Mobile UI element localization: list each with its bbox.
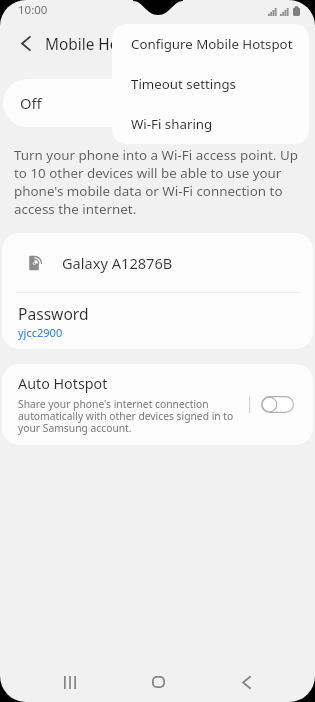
staticText: yjcc2900 [18, 325, 63, 340]
staticText: Auto Hotspot [18, 374, 108, 393]
button[interactable]: Recent apps [48, 660, 92, 702]
staticText: Mobile Hotspot [45, 34, 157, 55]
staticText: Configure Mobile Hotspot [131, 35, 293, 53]
button[interactable]: Password [2, 293, 313, 349]
staticText: Galaxy A12876B [62, 253, 173, 273]
staticText: Turn your phone into a Wi-Fi access poin… [14, 146, 301, 218]
staticText: Timeout settings [131, 75, 236, 93]
button[interactable]: Configure Mobile Hotspot [112, 24, 309, 64]
button[interactable]: Auto Hotspot [2, 364, 313, 445]
button[interactable]: Navigate up [6, 24, 46, 64]
button[interactable]: Off [3, 79, 307, 127]
staticText: Password [18, 303, 89, 324]
button[interactable]: Back [224, 660, 268, 702]
button[interactable]: Home [136, 660, 180, 702]
staticText: Wi-Fi sharing [131, 115, 213, 133]
button[interactable]: Galaxy A12876B [2, 233, 313, 292]
staticText: Share your phone's internet connection a… [18, 397, 246, 435]
button[interactable]: Timeout settings [112, 64, 309, 104]
staticText: Off [20, 93, 42, 113]
button[interactable]: Wi-Fi sharing [112, 104, 309, 144]
staticText: 10:00 [18, 2, 48, 18]
button[interactable]: Auto Hotspot switch, off [261, 396, 294, 413]
